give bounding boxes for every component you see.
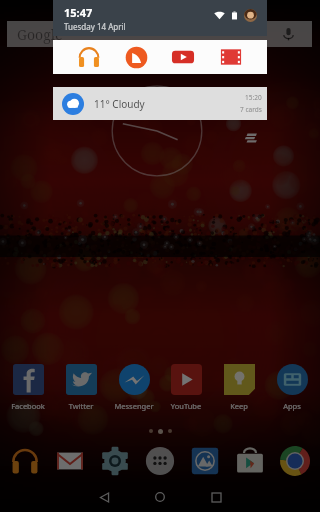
button[interactable]: Facebook [3,364,53,411]
button[interactable]: Twitter [56,364,106,411]
button[interactable] [53,40,267,74]
staticText: 15:20 [245,93,262,102]
button[interactable]: Google [7,21,312,47]
staticText: 7 cards [240,105,262,114]
button[interactable]: 11° Cloudy [53,87,267,120]
staticText: Messenger [109,401,159,411]
staticText: Google [17,25,63,44]
button[interactable]: Back [78,482,130,512]
button[interactable]: Play Store [230,441,270,481]
staticText: Tuesday 14 April [64,21,126,32]
button[interactable]: Play Music [5,441,45,481]
button[interactable]: Settings [95,441,135,481]
staticText: YouTube [161,401,211,411]
button[interactable]: Photos [185,441,225,481]
button[interactable]: Apps [267,364,317,411]
button[interactable]: All apps [140,441,180,481]
button[interactable]: Home [134,482,186,512]
button[interactable]: Messenger [109,364,159,411]
staticText: Twitter [56,401,106,411]
staticText: 11° Cloudy [94,97,145,111]
button[interactable]: Keep [214,364,264,411]
staticText: Keep [214,401,264,411]
button[interactable]: Chrome [275,441,315,481]
staticText: Facebook [3,401,53,411]
staticText: Apps [267,401,317,411]
staticText: 15:47 [64,5,93,20]
button[interactable]: Recents [190,482,242,512]
button[interactable]: Gmail [50,441,90,481]
button[interactable]: YouTube [161,364,211,411]
